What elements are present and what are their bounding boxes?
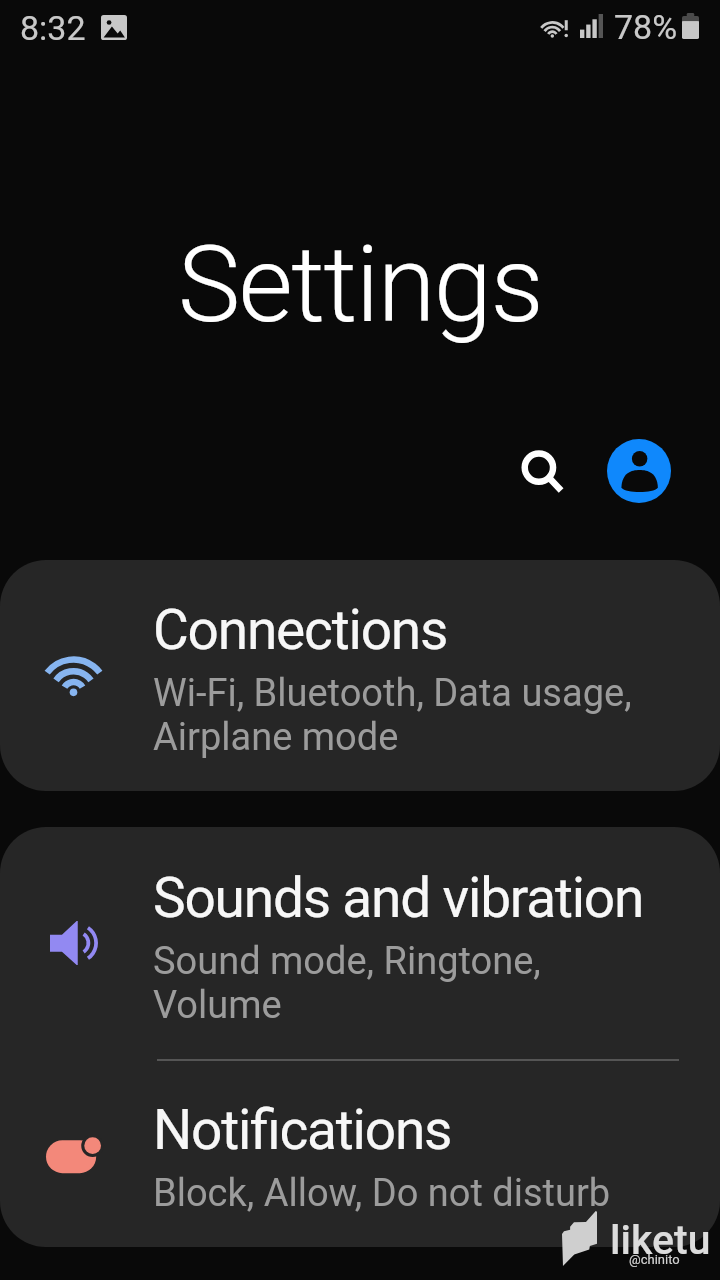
staticText: liketu — [610, 1216, 711, 1264]
staticText: Connections — [153, 598, 448, 662]
staticText: Notifications — [153, 1098, 452, 1162]
staticText: Wi-Fi, Bluetooth, Data usage, Airplane m… — [153, 671, 632, 759]
staticText: Sound mode, Ringtone, Volume — [153, 939, 541, 1027]
staticText: 8:32 — [20, 8, 86, 48]
button[interactable]: Account — [607, 439, 671, 503]
staticText: @chinito — [629, 1252, 680, 1267]
staticText: Block, Allow, Do not disturb — [153, 1171, 611, 1216]
button[interactable]: Connections — [0, 560, 720, 791]
staticText: Settings — [178, 224, 543, 347]
staticText: Sounds and vibration — [153, 866, 644, 930]
button[interactable]: Search — [506, 435, 578, 507]
button[interactable]: Notifications — [0, 1061, 720, 1247]
staticText: 78% — [614, 7, 678, 47]
button[interactable]: Sounds and vibration — [0, 827, 720, 1059]
